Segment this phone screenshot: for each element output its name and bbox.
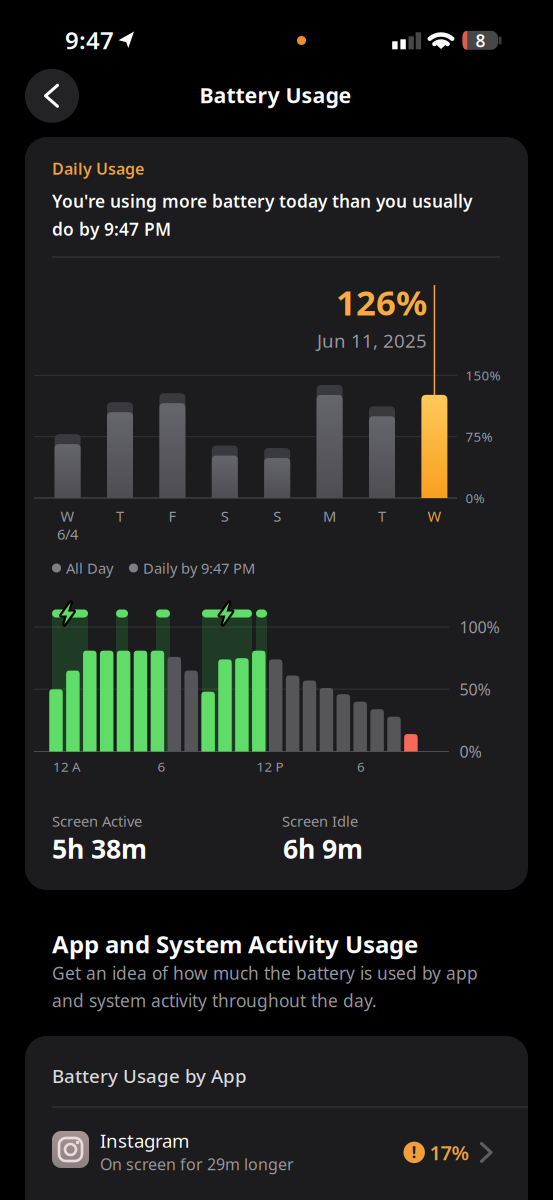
staticText: You're using more battery today than you… [52,189,472,212]
staticText: W [427,506,441,526]
staticText: S [221,506,229,526]
staticText: Jun 11, 2025 [317,328,427,353]
staticText: All Day [66,558,113,578]
button[interactable]: Back [25,69,79,123]
staticText: On screen for 29m longer [100,1153,294,1175]
staticText: Battery Usage [199,81,351,109]
button[interactable]: Instagram [25,1115,528,1189]
staticText: 126% [336,279,427,325]
staticText: M [323,506,336,526]
staticText: 5h 38m [52,831,147,866]
staticText: 75% [465,428,492,445]
staticText: T [116,506,124,526]
staticText: Screen Active [52,811,142,831]
staticText: W [61,506,75,526]
staticText: 100% [459,616,499,638]
staticText: S [273,506,281,526]
staticText: and system activity throughout the day. [52,989,377,1012]
staticText: Daily by 9:47 PM [143,558,255,578]
staticText: 150% [465,366,500,384]
staticText: Instagram [100,1128,189,1153]
staticText: 6/4 [57,524,78,544]
staticText: 12 A [53,758,81,775]
staticText: Screen Idle [282,811,358,831]
staticText: T [378,506,386,526]
staticText: Get an idea of how much the battery is u… [52,961,478,984]
staticText: Battery Usage by App [52,1063,247,1088]
staticText: do by 9:47 PM [52,217,171,240]
staticText: 50% [459,679,490,700]
staticText: 17% [429,1139,469,1166]
staticText: 0% [459,741,481,762]
staticText: 6 [357,758,365,775]
staticText: 8 [475,29,485,52]
staticText: Daily Usage [52,158,144,179]
staticText: 12 P [256,758,283,775]
staticText: ! [412,1141,417,1163]
staticText: 9:47 [65,24,114,56]
staticText: 6h 9m [283,831,363,866]
staticText: App and System Activity Usage [52,928,418,960]
staticText: F [168,506,176,526]
staticText: 0% [465,489,484,507]
staticText: 6 [157,758,165,775]
